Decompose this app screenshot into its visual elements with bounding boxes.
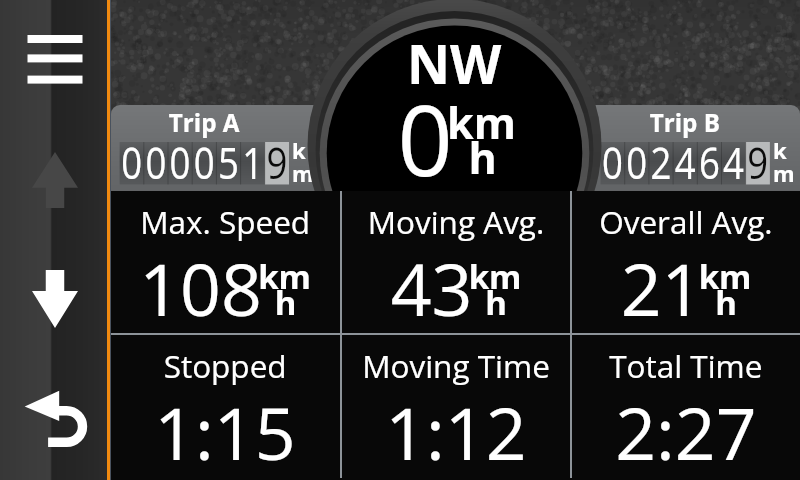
button[interactable]: Scroll down [32, 270, 78, 328]
button[interactable] [572, 335, 800, 478]
button[interactable] [342, 335, 570, 478]
button[interactable] [591, 105, 800, 191]
button[interactable] [111, 105, 320, 191]
button[interactable]: Menu [18, 24, 92, 96]
button[interactable]: Scroll up [32, 152, 78, 208]
button[interactable]: Back [20, 385, 92, 453]
button[interactable] [342, 191, 570, 333]
button[interactable] [111, 191, 340, 333]
button[interactable] [572, 191, 800, 333]
button[interactable] [111, 335, 340, 478]
